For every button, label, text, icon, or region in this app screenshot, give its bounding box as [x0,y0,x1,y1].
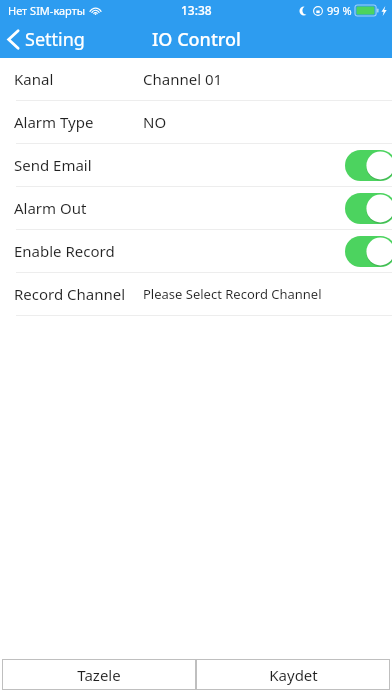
staticText: Send Email [14,155,92,175]
button[interactable]: Toggle [345,236,392,267]
button[interactable]: Alarm Type [0,101,392,143]
staticText: Alarm Type [14,112,94,132]
staticText: 13:38 [181,2,212,18]
staticText: Enable Record [14,241,115,261]
staticText: Record Channel [14,284,126,304]
staticText: IO Control [152,27,241,52]
button[interactable]: Toggle [345,150,392,181]
button[interactable]: Toggle [345,193,392,224]
staticText: Please Select Record Channel [143,285,322,303]
staticText: 99 % [327,3,352,18]
button[interactable]: Tazele [2,659,196,690]
button[interactable]: Kaydet [196,659,390,690]
staticText: Channel 01 [143,69,223,89]
button[interactable]: Record Channel [0,273,392,315]
button[interactable]: Kanal [0,58,392,100]
staticText: Kaydet [269,665,318,685]
button[interactable]: Setting [0,23,95,56]
staticText: Нет SIM-карты [8,3,86,18]
staticText: NO [143,112,167,132]
button[interactable]: Enable Record [0,230,392,272]
staticText: Kanal [14,69,54,89]
button[interactable]: Send Email [0,144,392,186]
staticText: Setting [25,27,85,52]
staticText: Alarm Out [14,198,87,218]
staticText: Tazele [77,665,121,685]
button[interactable]: Alarm Out [0,187,392,229]
